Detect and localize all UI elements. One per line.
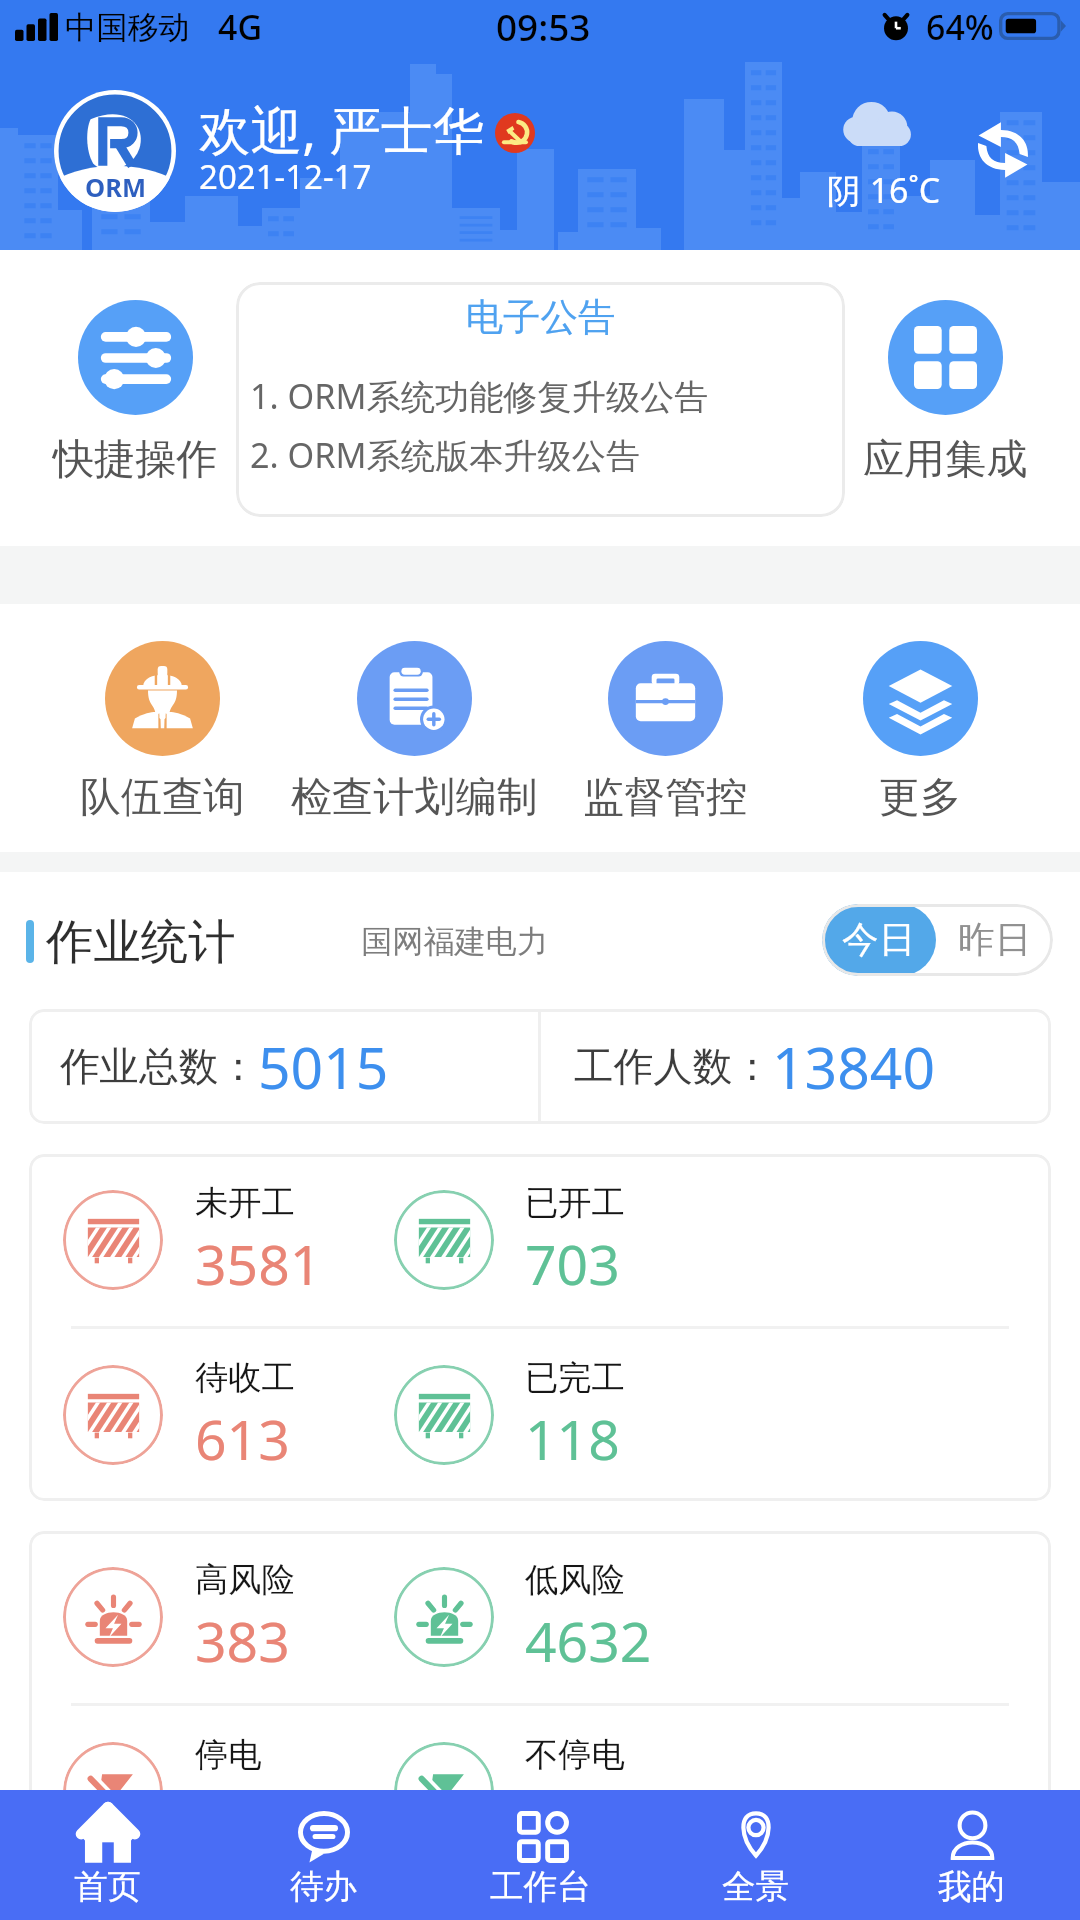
button[interactable] xyxy=(246,1329,642,1501)
staticText: 待收工 xyxy=(195,1357,295,1399)
staticText: 监督管控 xyxy=(583,771,748,823)
button[interactable]: 首页 xyxy=(0,1790,216,1920)
button[interactable]: 监督管控 xyxy=(539,641,791,823)
staticText: 5015 xyxy=(258,1028,389,1106)
button[interactable]: 我的 xyxy=(864,1790,1080,1920)
button[interactable] xyxy=(29,1329,311,1501)
staticText: 1. ORM系统功能修复升级公告 xyxy=(250,372,709,419)
staticText: 阴 16˚C xyxy=(827,167,941,213)
staticText: 2021-12-17 xyxy=(199,154,372,199)
staticText: 高风险 xyxy=(195,1559,295,1601)
staticText: 不停电 xyxy=(525,1734,625,1776)
button[interactable] xyxy=(246,1531,642,1703)
staticText: 4632 xyxy=(525,1603,652,1678)
staticText: 低风险 xyxy=(525,1559,625,1601)
staticText: 更多 xyxy=(879,771,962,823)
staticText: 作业统计 xyxy=(46,912,236,972)
staticText: 工作台 xyxy=(490,1866,591,1908)
staticText: 欢迎, 严士华 xyxy=(199,94,485,164)
staticText: 待办 xyxy=(290,1866,358,1908)
button[interactable]: 更多 xyxy=(794,641,1046,823)
button[interactable] xyxy=(246,1706,642,1878)
staticText: 检查计划编制 xyxy=(291,771,538,823)
staticText: 中国移动 xyxy=(65,8,190,47)
staticText: 已完工 xyxy=(525,1357,625,1399)
staticText: 2. ORM系统版本升级公告 xyxy=(250,431,641,478)
button[interactable]: 工作台 xyxy=(432,1790,648,1920)
staticText: 已开工 xyxy=(525,1182,625,1224)
button[interactable]: 快捷操作 xyxy=(29,300,241,485)
staticText: 4G xyxy=(218,4,263,50)
button[interactable]: Refresh xyxy=(977,121,1029,179)
button[interactable] xyxy=(246,1154,642,1326)
staticText: 13840 xyxy=(772,1028,936,1106)
staticText: 未开工 xyxy=(195,1182,295,1224)
button[interactable]: 今日 xyxy=(822,904,936,976)
button[interactable] xyxy=(29,1706,311,1878)
button[interactable]: 应用集成 xyxy=(839,300,1051,485)
staticText: 昨日 xyxy=(958,917,1032,963)
staticText: 703 xyxy=(525,1226,620,1301)
staticText: 118 xyxy=(525,1401,620,1476)
staticText: 64% xyxy=(926,4,994,50)
button[interactable]: 队伍查询 xyxy=(36,641,288,823)
staticText: 383 xyxy=(195,1603,290,1678)
button[interactable]: 检查计划编制 xyxy=(288,641,540,823)
staticText: 快捷操作 xyxy=(53,433,218,485)
staticText: 电子公告 xyxy=(236,294,845,341)
staticText: ORM xyxy=(85,170,146,205)
staticText: 全景 xyxy=(722,1866,790,1908)
button[interactable]: 全景 xyxy=(648,1790,864,1920)
staticText: 作业总数： xyxy=(60,1042,258,1092)
staticText: 首页 xyxy=(74,1866,142,1908)
staticText: 队伍查询 xyxy=(80,771,245,823)
staticText: 613 xyxy=(195,1401,290,1476)
staticText: 09:53 xyxy=(496,2,591,52)
staticText: 国网福建电力 xyxy=(361,922,549,961)
staticText: 3581 xyxy=(195,1226,322,1301)
staticText: 应用集成 xyxy=(863,433,1028,485)
staticText: 停电 xyxy=(195,1734,262,1776)
button[interactable]: 昨日 xyxy=(936,904,1053,976)
staticText: 我的 xyxy=(938,1866,1006,1908)
button[interactable]: 电子公告 xyxy=(236,282,845,517)
button[interactable] xyxy=(29,1154,311,1326)
button[interactable]: 待办 xyxy=(216,1790,432,1920)
staticText: 工作人数： xyxy=(574,1042,772,1092)
button[interactable] xyxy=(29,1531,311,1703)
staticText: 今日 xyxy=(842,917,916,963)
